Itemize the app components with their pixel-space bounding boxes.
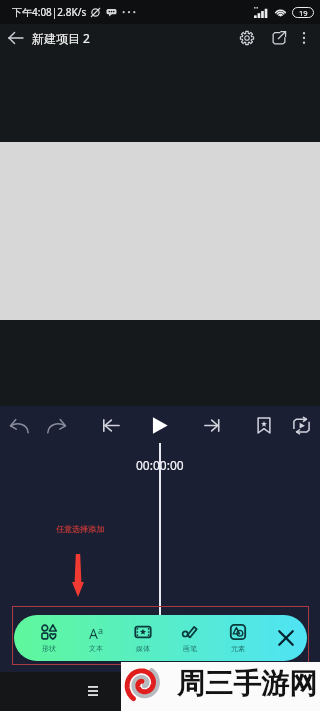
staticText: 周三手游网 [177,666,317,701]
button[interactable]: 元素 [215,615,261,661]
button[interactable]: Export [266,25,292,51]
button[interactable]: More options [292,26,316,50]
button[interactable]: 画笔 [167,615,213,661]
staticText: 文本 [89,644,103,653]
button[interactable]: Bookmark [248,410,280,440]
staticText: 下午4:08|2.8K/s [12,5,87,19]
button[interactable]: Play [144,410,176,440]
staticText: 形状 [42,644,56,653]
button[interactable]: Close [267,615,305,661]
button[interactable]: Undo [3,410,35,440]
button[interactable]: 媒体 [120,615,166,661]
staticText: 画笔 [183,644,197,653]
button[interactable]: 形状 [26,615,72,661]
staticText: 元素 [231,644,245,653]
staticText: 00:00:00 [136,457,184,473]
staticText: 新建项目 2 [32,30,90,46]
button[interactable]: Settings [234,25,260,51]
button[interactable]: Skip to end [196,410,228,440]
staticText: 媒体 [136,644,150,653]
button[interactable]: Redo [41,410,73,440]
button[interactable]: Skip to start [95,410,127,440]
staticText: A [89,624,98,640]
staticText: 19 [299,8,308,18]
staticText: 任意选择添加 [56,524,104,534]
staticText: a [98,624,104,636]
button[interactable]: A [73,615,119,661]
button[interactable]: Loop [285,410,317,440]
button[interactable]: Menu [78,676,108,706]
button[interactable]: Back [2,24,30,52]
